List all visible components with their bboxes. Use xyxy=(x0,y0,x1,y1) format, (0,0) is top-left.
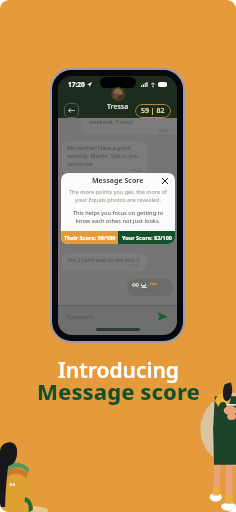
staticText: Message Score xyxy=(92,176,144,186)
button[interactable]: Your Score: 82/100 xyxy=(118,231,175,244)
staticText: 12:36 ✓ xyxy=(158,128,173,133)
staticText: Yes, I can't wait to see you :) xyxy=(67,256,139,263)
staticText: Your Score: 82/100 xyxy=(122,234,172,241)
staticText: 17:20 xyxy=(68,80,85,89)
staticText: Type here... xyxy=(66,313,99,321)
button[interactable]: Close xyxy=(160,176,169,185)
button[interactable]: Back xyxy=(64,103,79,118)
staticText: Introducing xyxy=(58,356,179,385)
staticText: 59 | 82 xyxy=(141,106,165,116)
button[interactable]: 59 | 82 xyxy=(135,104,171,118)
staticText: Me neither! Have a good evening, Martin.… xyxy=(67,144,142,168)
staticText: Their Score: 59/100 xyxy=(64,234,116,241)
staticText: 17:10 xyxy=(128,263,139,268)
staticText: The more points you get, the more of you… xyxy=(65,188,171,204)
button[interactable]: Their Score: 59/100 xyxy=(61,231,118,244)
staticText: This helps you focus on getting to know … xyxy=(65,209,171,225)
staticText: 17:34 xyxy=(131,168,142,173)
button[interactable]: Send xyxy=(156,310,169,323)
staticText: weekend, Tressa! xyxy=(89,118,134,125)
staticText: Message score xyxy=(37,376,200,406)
staticText: 17:10 ✓ xyxy=(142,288,157,293)
staticText: Tressa xyxy=(107,102,129,112)
